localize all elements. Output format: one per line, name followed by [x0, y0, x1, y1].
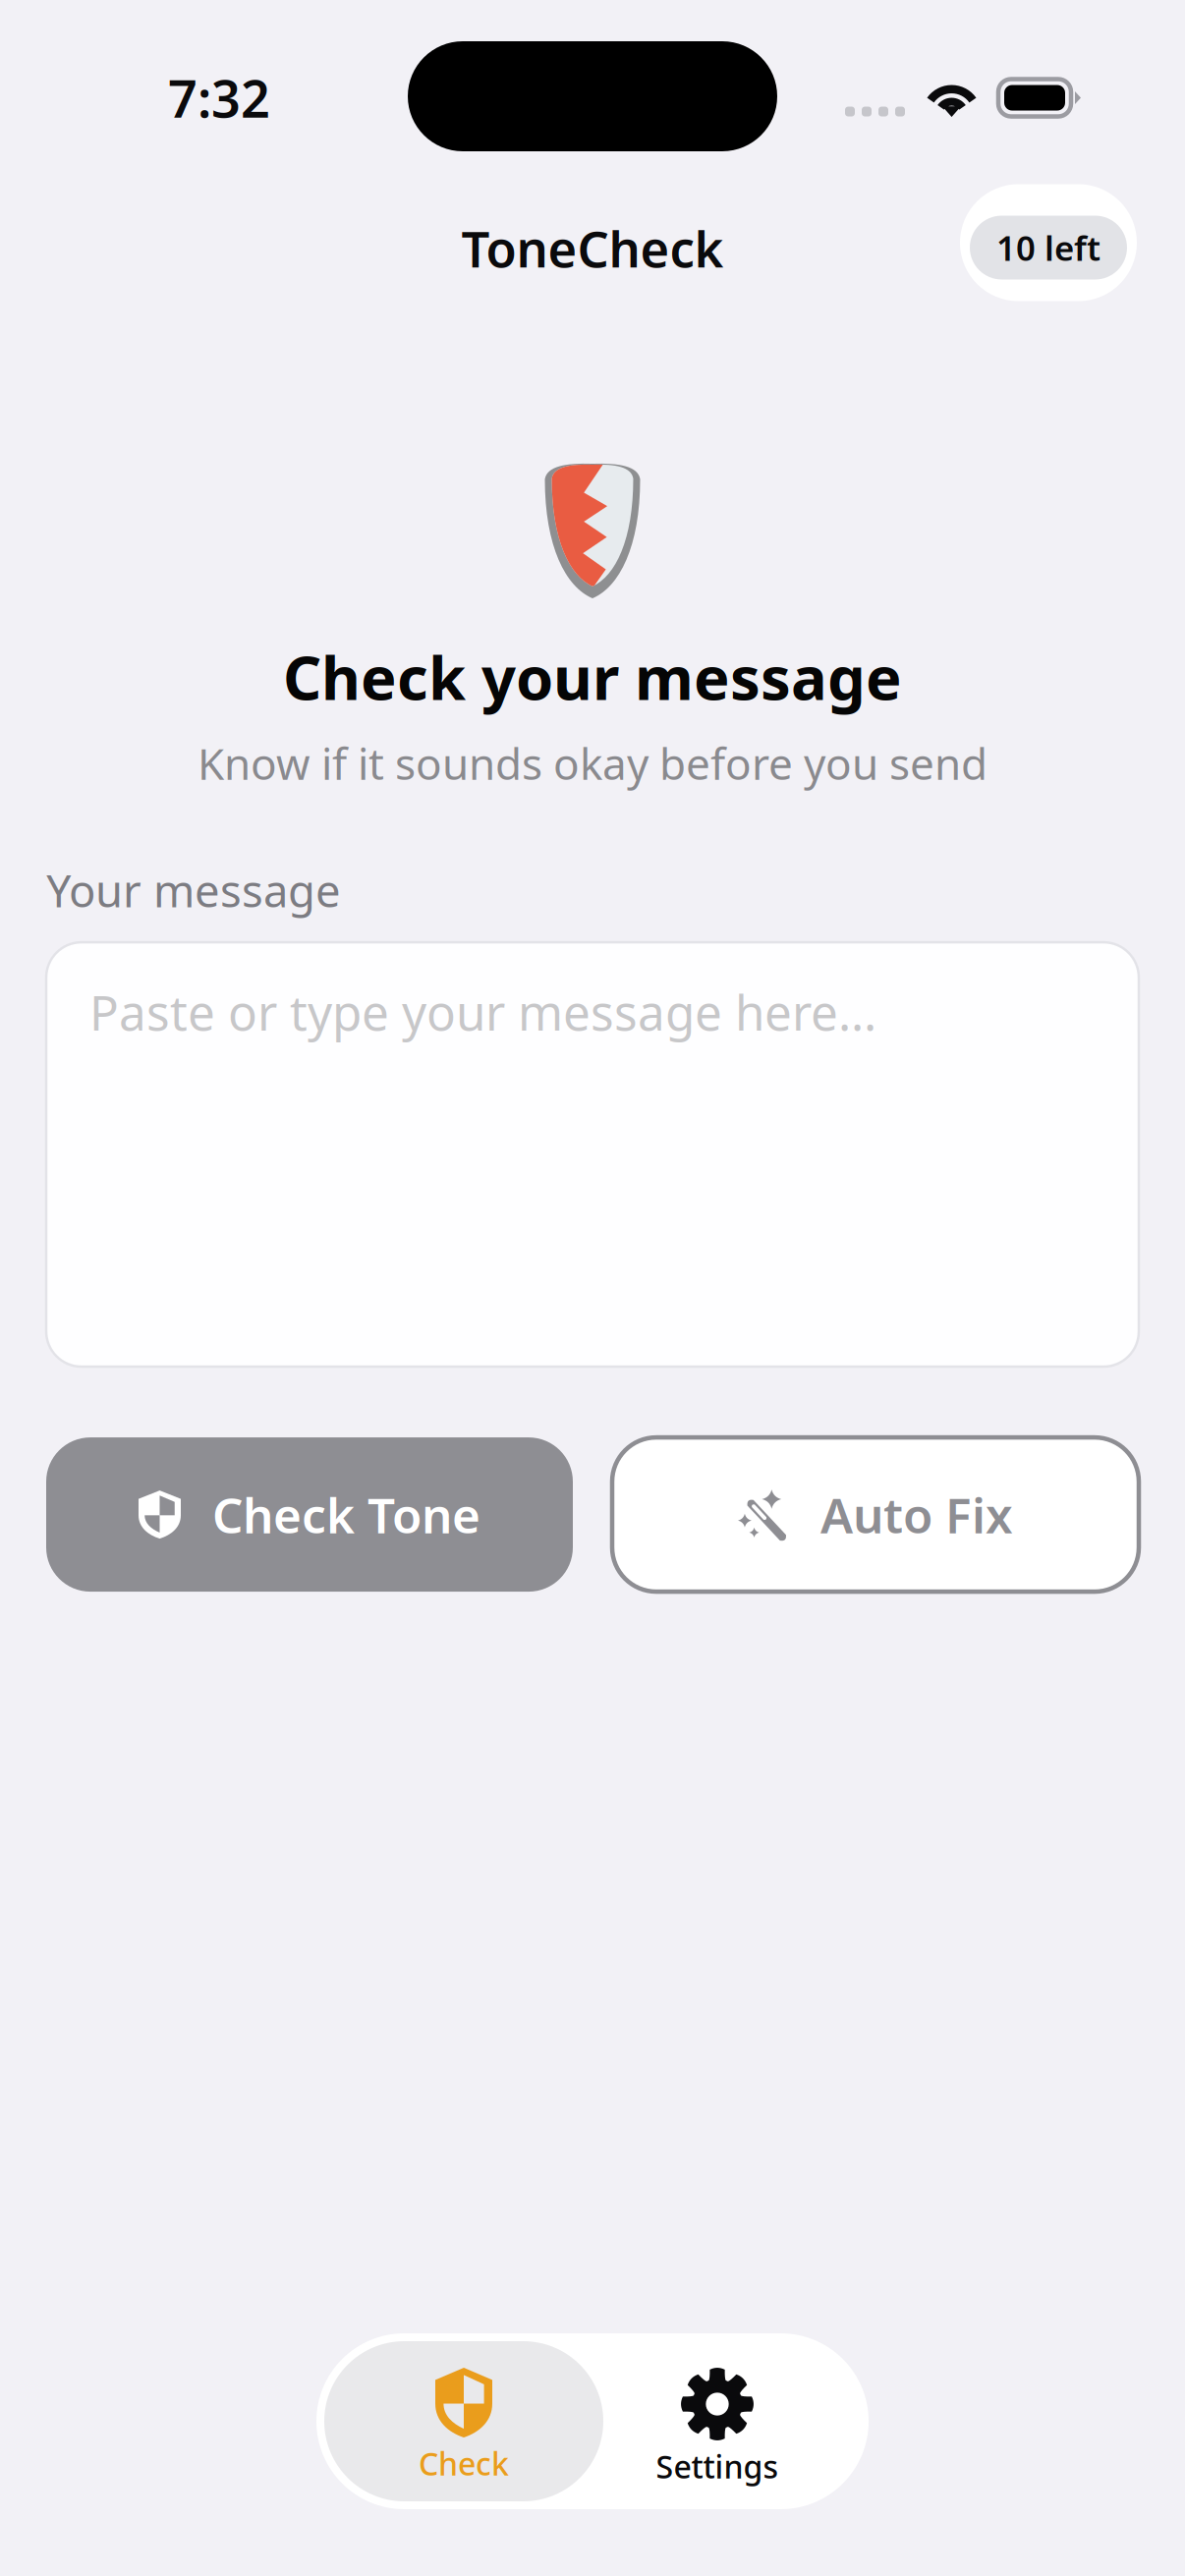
staticText: Your message — [46, 861, 341, 920]
staticText: Check your message — [283, 637, 902, 717]
button[interactable]: Settings — [603, 2341, 831, 2501]
staticText: ToneCheck — [461, 215, 724, 281]
staticText: Auto Fix — [820, 1482, 1013, 1547]
button[interactable]: Check Tone — [46, 1437, 573, 1592]
staticText: Know if it sounds okay before you send — [197, 734, 987, 792]
staticText: Check — [419, 2442, 509, 2484]
staticText: 10 left — [996, 225, 1100, 270]
button[interactable]: Check — [324, 2341, 603, 2501]
staticText: 7:32 — [168, 64, 270, 132]
button[interactable]: Auto Fix — [612, 1437, 1139, 1592]
button[interactable]: 10 left — [960, 184, 1137, 301]
staticText: Check Tone — [212, 1482, 480, 1547]
staticText: Settings — [656, 2445, 779, 2487]
staticText: Paste or type your message here... — [89, 980, 876, 1044]
